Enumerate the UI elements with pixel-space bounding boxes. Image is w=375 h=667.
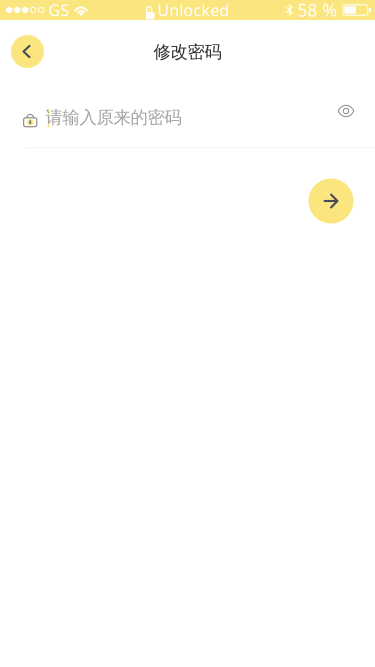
staticText: 修改密码 bbox=[153, 41, 221, 63]
button[interactable]: Back bbox=[4, 28, 50, 74]
staticText: 58 % bbox=[297, 0, 336, 21]
staticText: Unlocked bbox=[157, 0, 229, 21]
staticText: GS bbox=[48, 0, 69, 21]
button[interactable]: Next bbox=[303, 173, 359, 229]
staticText: 请输入原来的密码 bbox=[45, 107, 181, 128]
button[interactable]: Show password bbox=[324, 89, 368, 133]
